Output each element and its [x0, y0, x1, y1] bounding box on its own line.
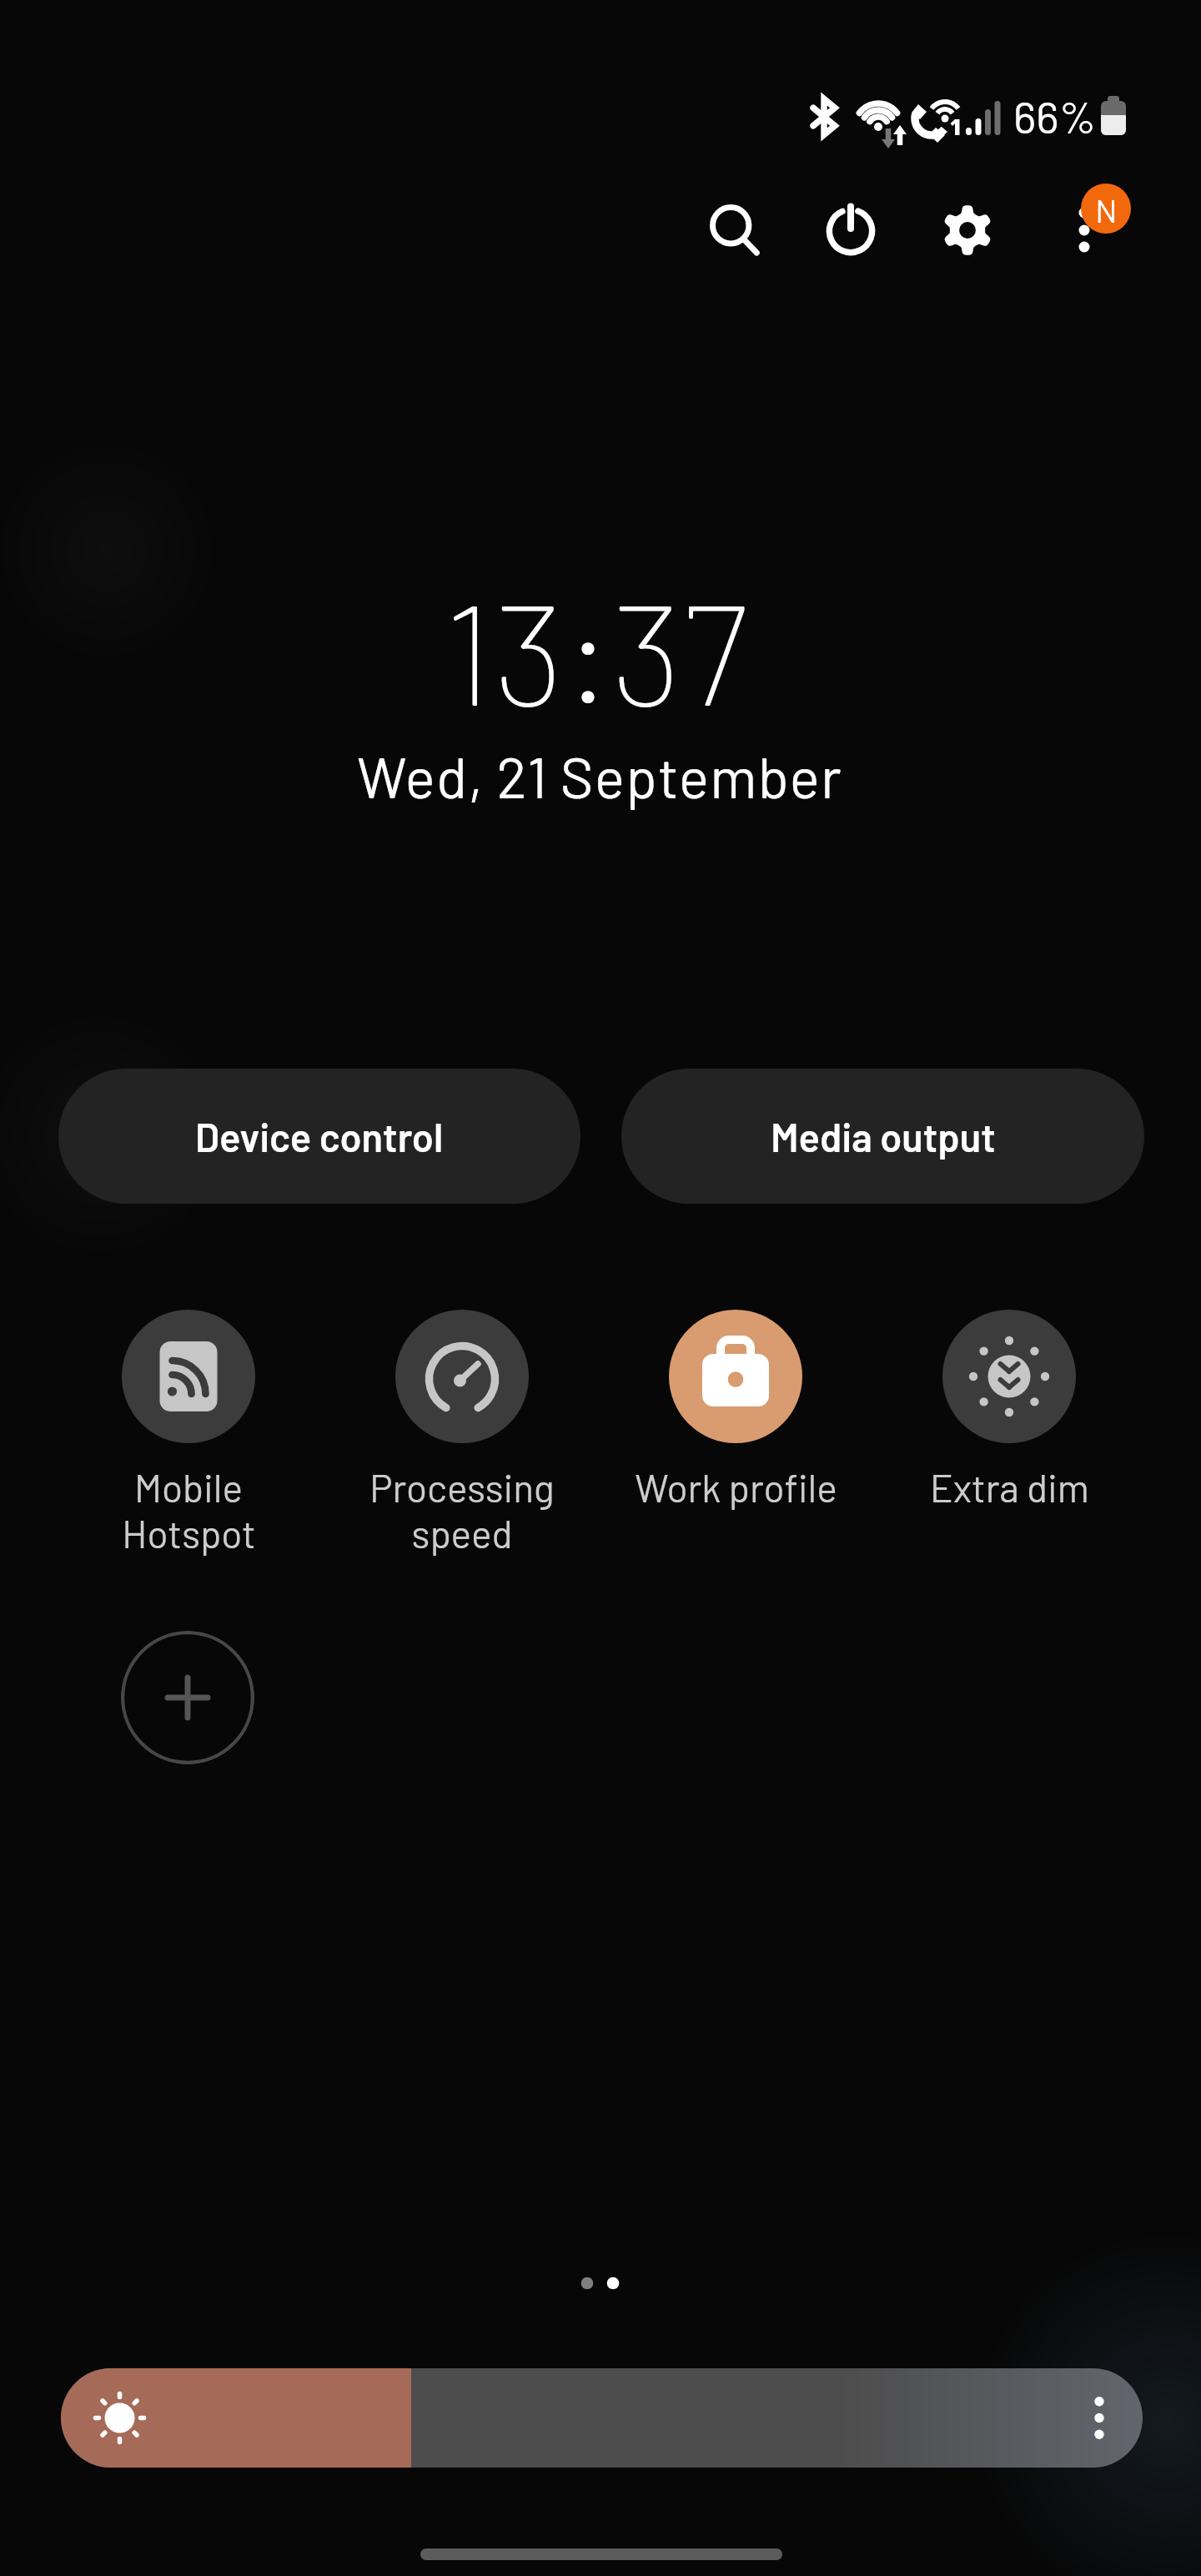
staticText: Hotspot: [122, 1510, 256, 1556]
staticText: Mobile: [134, 1464, 243, 1510]
staticText: Wed, 21 September: [357, 742, 842, 810]
button[interactable]: Add tile: [121, 1631, 254, 1764]
staticText: Media output: [771, 1113, 996, 1160]
button[interactable]: More options: [1051, 167, 1143, 259]
staticText: Extra dim: [930, 1464, 1089, 1510]
button[interactable]: Brightness: [61, 2368, 1143, 2468]
button[interactable]: Search: [689, 184, 772, 267]
button[interactable]: Settings: [926, 189, 1009, 272]
button[interactable]: Device control: [58, 1069, 580, 1204]
button[interactable]: Processing: [325, 1310, 599, 1556]
staticText: Work profile: [635, 1464, 837, 1510]
staticText: N: [1095, 190, 1118, 229]
button[interactable]: Mobile: [52, 1310, 325, 1556]
staticText: 66%: [1013, 89, 1097, 143]
staticText: 13:37: [444, 563, 748, 734]
staticText: Device control: [195, 1113, 444, 1160]
button[interactable]: Work profile: [599, 1310, 872, 1510]
staticText: Processing: [369, 1464, 555, 1510]
button[interactable]: Media output: [621, 1069, 1144, 1204]
staticText: speed: [411, 1510, 513, 1556]
button[interactable]: Power off: [809, 189, 892, 273]
button[interactable]: Extra dim: [872, 1310, 1146, 1510]
